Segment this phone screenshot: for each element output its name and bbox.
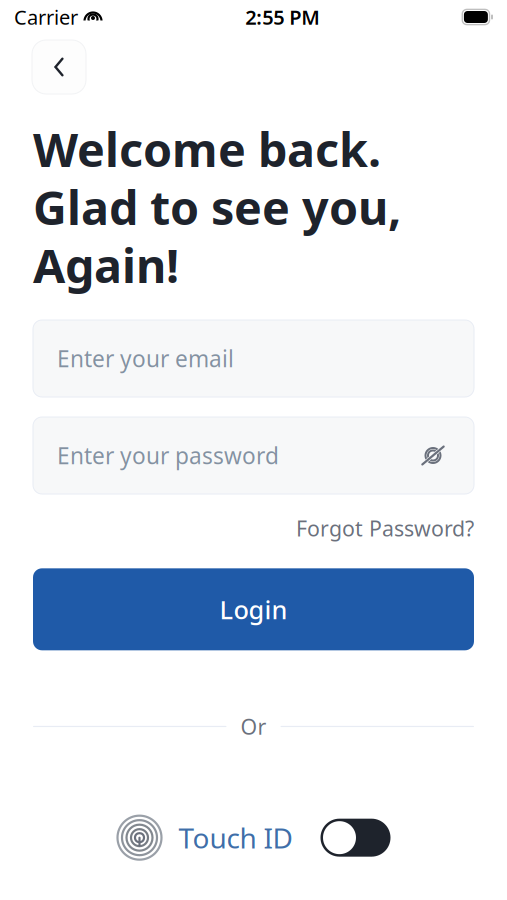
button[interactable]: Show password [416, 438, 450, 472]
staticText: 2:55 PM [245, 4, 320, 30]
button[interactable]: Login [33, 568, 474, 650]
staticText: Enter your password [57, 440, 279, 470]
button[interactable]: Back [32, 40, 86, 94]
staticText: Touch ID [178, 819, 292, 856]
staticText: Or [240, 712, 266, 741]
staticText: Login [219, 592, 287, 626]
staticText: Enter your email [57, 343, 234, 373]
button[interactable]: Touch ID [116, 815, 292, 861]
staticText: Welcome back. [33, 118, 381, 180]
button[interactable]: Touch ID toggle [320, 819, 390, 857]
staticText: Glad to see you, [33, 176, 401, 238]
staticText: Again! [33, 234, 179, 296]
button[interactable]: Forgot Password? [296, 514, 474, 542]
staticText: Carrier [14, 4, 78, 30]
staticText: Forgot Password? [296, 514, 474, 542]
